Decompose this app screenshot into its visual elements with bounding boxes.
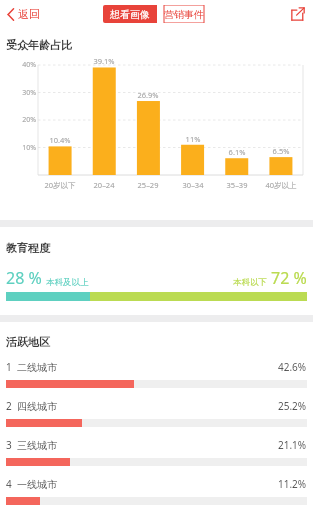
staticText: 40% xyxy=(12,60,36,70)
staticText: 39.1% xyxy=(84,56,124,66)
staticText: 10% xyxy=(12,143,36,153)
button[interactable]: 想看画像 xyxy=(103,5,157,23)
staticText: 26.9% xyxy=(128,90,168,100)
staticText: 72 % xyxy=(271,267,307,289)
staticText: 20–24 xyxy=(82,180,126,190)
staticText: 本科以下 xyxy=(233,277,267,288)
staticText: 28 % xyxy=(6,267,42,289)
staticText: 4 一线城市 xyxy=(6,477,57,491)
staticText: 25–29 xyxy=(126,180,170,190)
staticText: 受众年龄占比 xyxy=(6,38,72,52)
staticText: 11.2% xyxy=(278,477,307,491)
button[interactable]: 3 三线城市 xyxy=(0,427,313,466)
staticText: 想看画像 xyxy=(110,8,150,21)
button[interactable]: 分享 xyxy=(283,0,313,28)
staticText: 活跃地区 xyxy=(6,335,50,349)
staticText: 20% xyxy=(12,115,36,125)
staticText: 1 二线城市 xyxy=(6,360,57,374)
button[interactable]: 返回 xyxy=(0,0,48,28)
button[interactable]: 1 二线城市 xyxy=(0,349,313,388)
button[interactable]: 4 一线城市 xyxy=(0,466,313,505)
staticText: 30% xyxy=(12,88,36,98)
staticText: 11% xyxy=(173,134,213,144)
staticText: 3 三线城市 xyxy=(6,438,57,452)
button[interactable]: 2 四线城市 xyxy=(0,388,313,427)
staticText: 营销事件 xyxy=(164,8,204,21)
staticText: 30–34 xyxy=(171,180,215,190)
staticText: 6.5% xyxy=(261,146,301,156)
staticText: 35–39 xyxy=(215,180,259,190)
staticText: 20岁以下 xyxy=(38,180,82,190)
staticText: 42.6% xyxy=(278,360,307,374)
staticText: 10.4% xyxy=(40,135,80,145)
staticText: 本科及以上 xyxy=(46,277,89,288)
button[interactable]: 营销事件 xyxy=(157,5,211,23)
staticText: 6.1% xyxy=(217,147,257,157)
staticText: 教育程度 xyxy=(6,241,50,255)
staticText: 21.1% xyxy=(278,438,307,452)
staticText: 25.2% xyxy=(278,399,307,413)
staticText: 40岁以上 xyxy=(259,180,303,190)
staticText: 返回 xyxy=(18,7,40,21)
staticText: 2 四线城市 xyxy=(6,399,57,413)
